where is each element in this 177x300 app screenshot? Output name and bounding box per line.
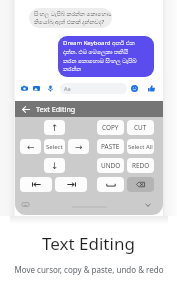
button[interactable]: key (20, 177, 52, 192)
staticText: Select All (128, 143, 153, 151)
button[interactable]: Select All (127, 139, 154, 154)
button[interactable]: key (97, 177, 124, 192)
staticText: ↓ (51, 161, 59, 171)
button[interactable]: Send like (145, 82, 157, 94)
staticText: CUT (134, 123, 147, 132)
staticText: Select (46, 143, 63, 151)
button[interactable]: key (55, 177, 87, 192)
staticText: සිංහල ටැපිබ් කරන්න කොහොමද කියෝබු ඇත් එකක… (34, 10, 112, 26)
button[interactable]: REDO (127, 158, 154, 173)
button[interactable]: key (127, 177, 154, 192)
button[interactable]: Camera (18, 82, 30, 94)
button[interactable]: Hide keyboard (141, 198, 154, 211)
staticText: COPY (102, 123, 119, 132)
staticText: Aa (64, 85, 71, 92)
button[interactable]: COPY (97, 120, 124, 135)
button[interactable]: UNDO (97, 158, 124, 173)
button[interactable]: Gallery (30, 82, 42, 94)
button[interactable]: Voice message (44, 82, 56, 94)
staticText: ↑ (51, 123, 59, 133)
staticText: Text Editing (36, 104, 76, 114)
button[interactable]: ← (20, 139, 41, 154)
button[interactable]: Back (15, 101, 36, 117)
staticText: PASTE (101, 142, 120, 151)
button[interactable]: Stickers (128, 82, 140, 94)
button[interactable]: ↑ (44, 120, 65, 135)
button[interactable]: ↓ (44, 158, 65, 173)
button[interactable]: PASTE (97, 139, 124, 154)
staticText: Text Editing (42, 232, 135, 255)
staticText: UNDO (101, 161, 121, 170)
button[interactable]: Switch keyboard (19, 198, 32, 211)
staticText: ← (27, 142, 35, 152)
staticText: → (75, 142, 83, 152)
button[interactable]: CUT (127, 120, 154, 135)
staticText: REDO (132, 161, 150, 170)
staticText: Move cursor, copy & paste, undo & redo (14, 264, 164, 275)
staticText: Dream Keyboard අර්න එක දාන්න. එම මෙලෙකා … (63, 39, 137, 73)
button[interactable]: Select (44, 139, 65, 154)
button[interactable]: → (68, 139, 89, 154)
button[interactable]: Aa (60, 83, 127, 94)
